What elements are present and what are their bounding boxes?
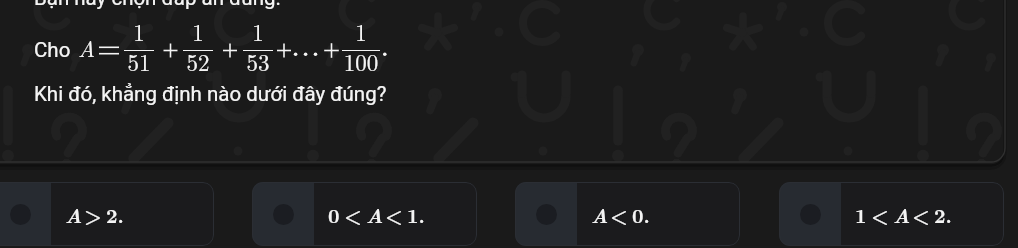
staticText: 1 (342, 15, 380, 48)
staticText: > (84, 200, 102, 229)
staticText: Bạn hãy chọn đáp án đúng. (34, 0, 281, 10)
staticText: < (871, 200, 889, 229)
staticText: Khi đó, khẳng định nào dưới đây đúng? (34, 82, 387, 106)
staticText: 53 (243, 45, 273, 78)
staticText: A (78, 31, 96, 64)
staticText: < (610, 200, 628, 229)
staticText: < (344, 200, 362, 229)
staticText: < (385, 200, 403, 229)
staticText: 2. (106, 200, 124, 229)
staticText: 100 (342, 45, 380, 78)
staticText: A (591, 200, 609, 229)
staticText: 0. (632, 200, 650, 229)
button[interactable]: 0 (252, 182, 477, 246)
staticText: A (65, 200, 83, 229)
staticText: A (366, 200, 384, 229)
staticText: 1. (407, 200, 425, 229)
staticText: Cho (34, 38, 71, 62)
staticText: 1 (855, 200, 867, 229)
button[interactable]: A (0, 182, 214, 246)
staticText: 1 (243, 15, 273, 48)
staticText: 0 (328, 200, 340, 229)
staticText: 51 (124, 45, 154, 78)
staticText: 2. (934, 200, 952, 229)
button[interactable]: 1 (779, 182, 1004, 246)
button[interactable]: A (515, 182, 740, 246)
staticText: 1 (124, 15, 154, 48)
staticText: 1 (183, 15, 213, 48)
staticText: A (893, 200, 911, 229)
staticText: < (912, 200, 930, 229)
staticText: 52 (183, 45, 213, 78)
